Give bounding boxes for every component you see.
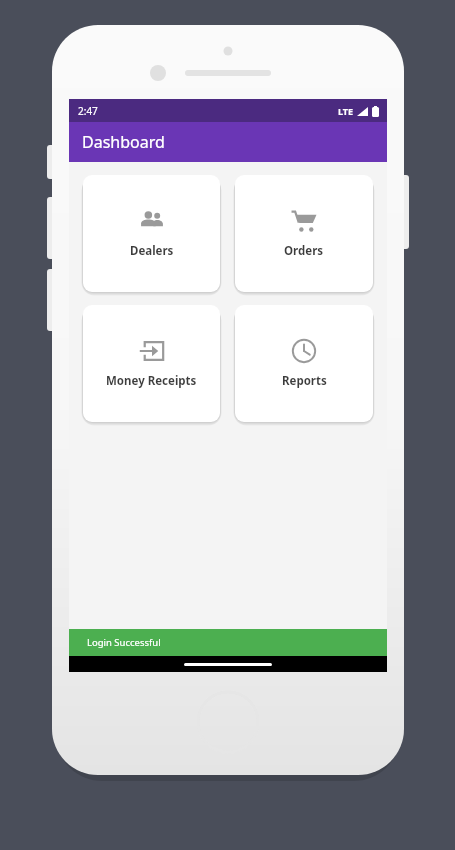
button[interactable]: Dealers — [83, 175, 220, 292]
staticText: 2:47 — [78, 104, 98, 118]
staticText: Login Successful — [87, 636, 161, 649]
button[interactable]: Login Successful — [69, 629, 387, 656]
button[interactable]: Reports — [235, 305, 373, 422]
staticText: Money Receipts — [106, 373, 197, 389]
button[interactable]: Orders — [235, 175, 373, 292]
staticText: LTE — [338, 105, 354, 117]
staticText: Reports — [282, 373, 327, 389]
staticText: Dealers — [130, 243, 174, 259]
button[interactable]: Money Receipts — [83, 305, 220, 422]
staticText: Orders — [284, 243, 324, 259]
staticText: Dashboard — [82, 131, 165, 153]
